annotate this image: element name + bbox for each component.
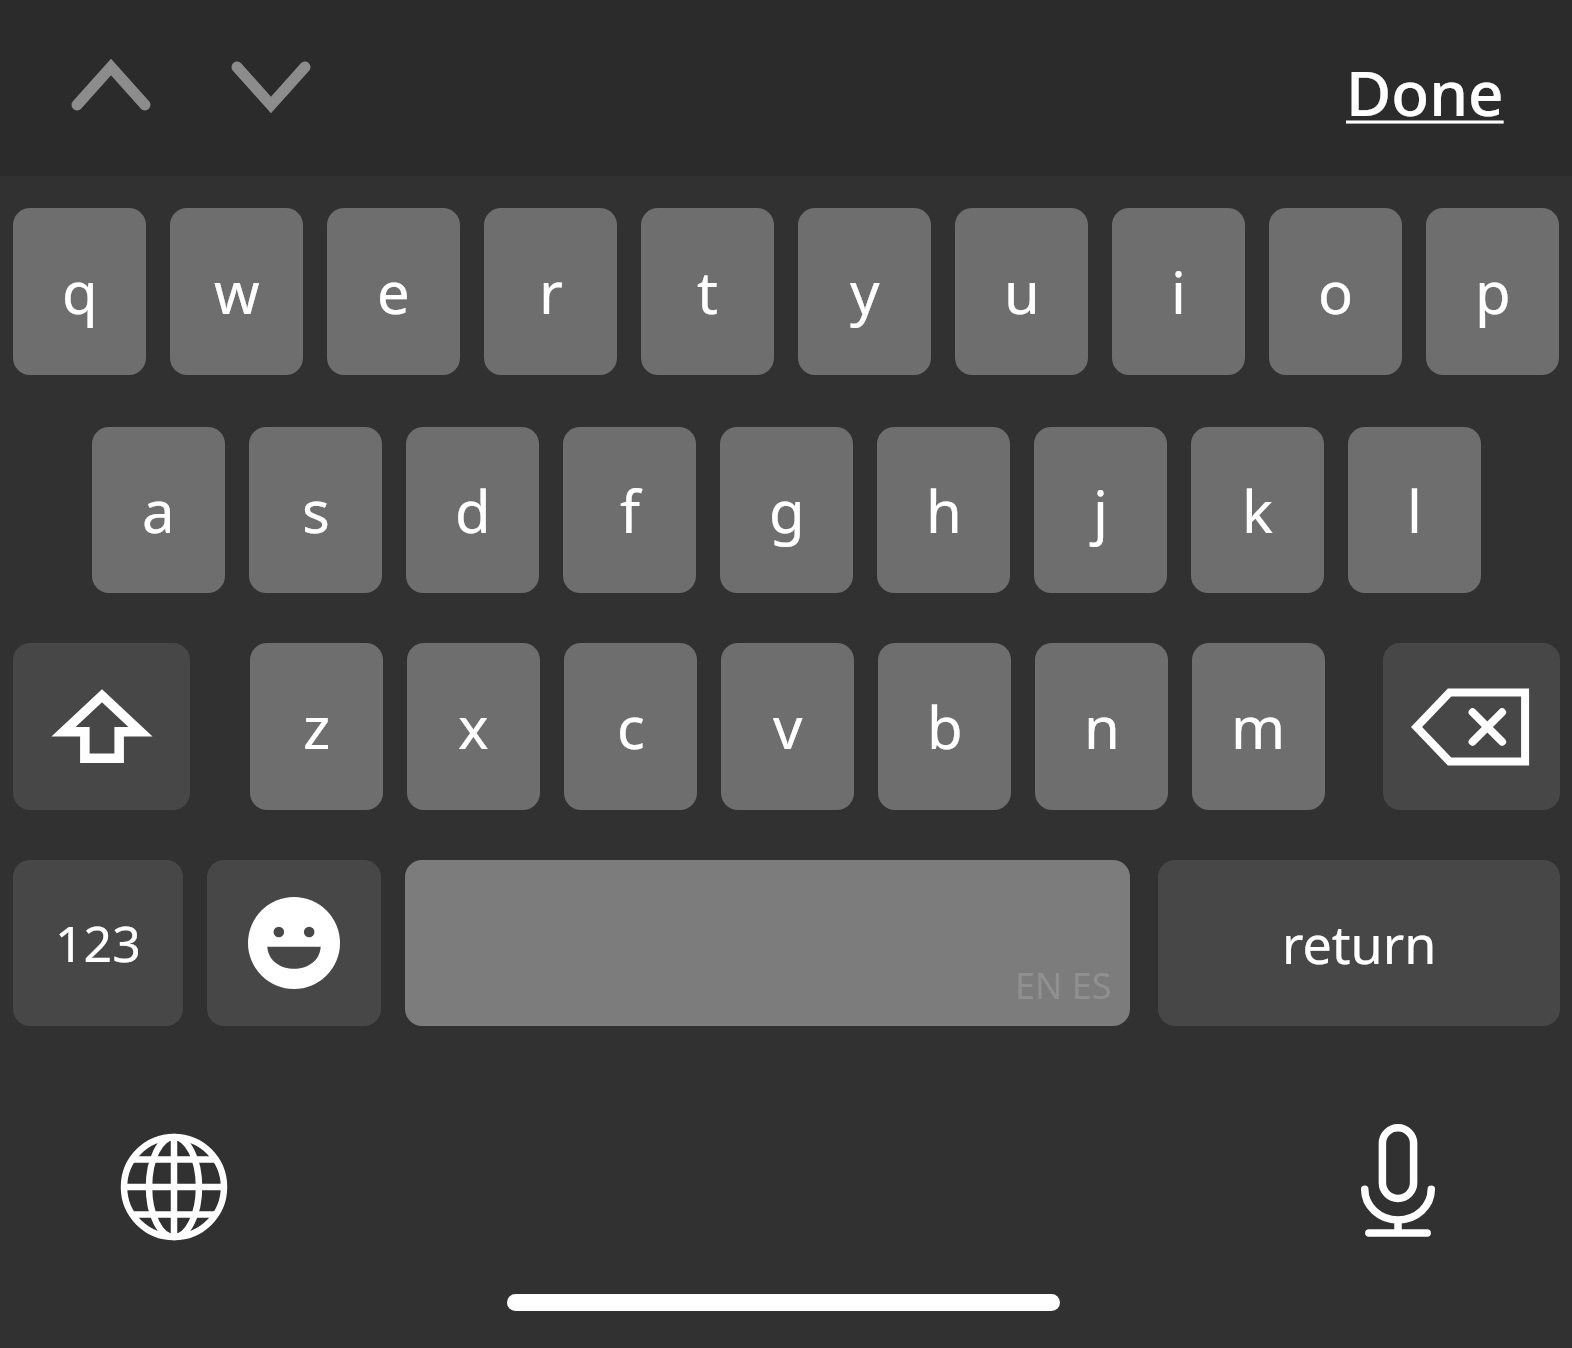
staticText: 123: [55, 909, 141, 977]
button[interactable]: f: [563, 427, 696, 593]
staticText: Done: [1346, 50, 1504, 134]
button[interactable]: y: [798, 208, 931, 375]
button[interactable]: return: [1158, 860, 1560, 1026]
button[interactable]: o: [1269, 208, 1402, 375]
button[interactable]: e: [327, 208, 460, 375]
staticText: g: [769, 471, 805, 550]
button[interactable]: x: [407, 643, 540, 810]
button[interactable]: Emoji: [207, 860, 381, 1026]
staticText: w: [214, 252, 260, 331]
button[interactable]: u: [955, 208, 1088, 375]
staticText: n: [1084, 687, 1120, 766]
button[interactable]: c: [564, 643, 697, 810]
staticText: v: [773, 687, 803, 766]
staticText: r: [539, 252, 563, 331]
staticText: o: [1318, 252, 1354, 331]
button[interactable]: z: [250, 643, 383, 810]
staticText: k: [1242, 471, 1273, 550]
staticText: x: [458, 687, 489, 766]
button[interactable]: Previous field: [58, 42, 164, 128]
button[interactable]: Backspace: [1383, 643, 1560, 810]
staticText: d: [455, 471, 491, 550]
staticText: u: [1004, 252, 1040, 331]
staticText: z: [303, 687, 331, 766]
button[interactable]: h: [877, 427, 1010, 593]
staticText: c: [617, 687, 645, 766]
button[interactable]: Switch keyboard: [120, 1133, 228, 1241]
button[interactable]: v: [721, 643, 854, 810]
staticText: l: [1407, 471, 1422, 550]
button[interactable]: Shift: [13, 643, 190, 810]
button[interactable]: l: [1348, 427, 1481, 593]
button[interactable]: a: [92, 427, 225, 593]
staticText: p: [1475, 252, 1511, 331]
button[interactable]: n: [1035, 643, 1168, 810]
button[interactable]: j: [1034, 427, 1167, 593]
button[interactable]: i: [1112, 208, 1245, 375]
staticText: f: [620, 471, 640, 550]
button[interactable]: Dictate: [1346, 1124, 1450, 1248]
staticText: h: [926, 471, 962, 550]
button[interactable]: Done: [1325, 40, 1525, 144]
button[interactable]: b: [878, 643, 1011, 810]
staticText: return: [1282, 908, 1437, 979]
button[interactable]: m: [1192, 643, 1325, 810]
button[interactable]: t: [641, 208, 774, 375]
staticText: t: [697, 252, 718, 331]
button[interactable]: q: [13, 208, 146, 375]
staticText: m: [1231, 687, 1286, 766]
staticText: EN ES: [1015, 961, 1112, 1010]
button[interactable]: Space: [405, 860, 1130, 1026]
staticText: y: [850, 252, 880, 331]
button[interactable]: k: [1191, 427, 1324, 593]
button[interactable]: Next field: [218, 42, 324, 128]
button[interactable]: p: [1426, 208, 1559, 375]
staticText: j: [1093, 471, 1108, 550]
staticText: i: [1171, 252, 1186, 331]
button[interactable]: w: [170, 208, 303, 375]
button[interactable]: r: [484, 208, 617, 375]
button[interactable]: 123: [13, 860, 183, 1026]
button[interactable]: g: [720, 427, 853, 593]
staticText: q: [62, 252, 98, 331]
staticText: e: [377, 252, 410, 331]
staticText: s: [302, 471, 330, 550]
staticText: b: [927, 687, 963, 766]
staticText: a: [142, 471, 175, 550]
button[interactable]: s: [249, 427, 382, 593]
button[interactable]: d: [406, 427, 539, 593]
